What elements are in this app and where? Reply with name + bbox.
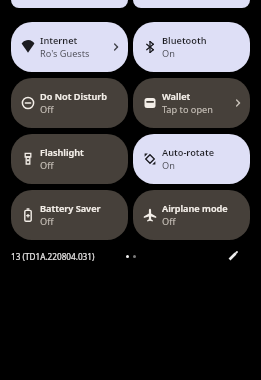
staticText: Airplane mode (162, 202, 228, 215)
button[interactable] (133, 0, 250, 8)
staticText: 13 (TD1A.220804.031) (11, 251, 95, 262)
button[interactable]: Do Not Disturb (11, 78, 128, 128)
staticText: Off (40, 215, 54, 228)
button[interactable] (11, 0, 128, 8)
button[interactable] (226, 249, 240, 263)
staticText: Flashlight (40, 146, 84, 159)
button[interactable]: Battery Saver (11, 190, 128, 240)
button[interactable]: Bluetooth (133, 22, 250, 72)
staticText: On (162, 159, 175, 172)
staticText: Bluetooth (162, 34, 207, 47)
button[interactable]: Auto-rotate (133, 134, 250, 184)
staticText: Wallet (162, 90, 191, 103)
staticText: Off (40, 159, 54, 172)
staticText: Off (40, 103, 54, 116)
staticText: Battery Saver (40, 202, 101, 215)
staticText: Auto-rotate (162, 146, 215, 159)
button[interactable]: Wallet (133, 78, 250, 128)
button[interactable]: Internet (11, 22, 128, 72)
button[interactable]: Flashlight (11, 134, 128, 184)
staticText: Off (162, 215, 176, 228)
staticText: Ro's Guests (40, 47, 90, 60)
staticText: Do Not Disturb (40, 90, 108, 103)
staticText: On (162, 47, 175, 60)
staticText: Internet (40, 34, 78, 47)
button[interactable]: Airplane mode (133, 190, 250, 240)
staticText: Tap to open (162, 103, 213, 116)
